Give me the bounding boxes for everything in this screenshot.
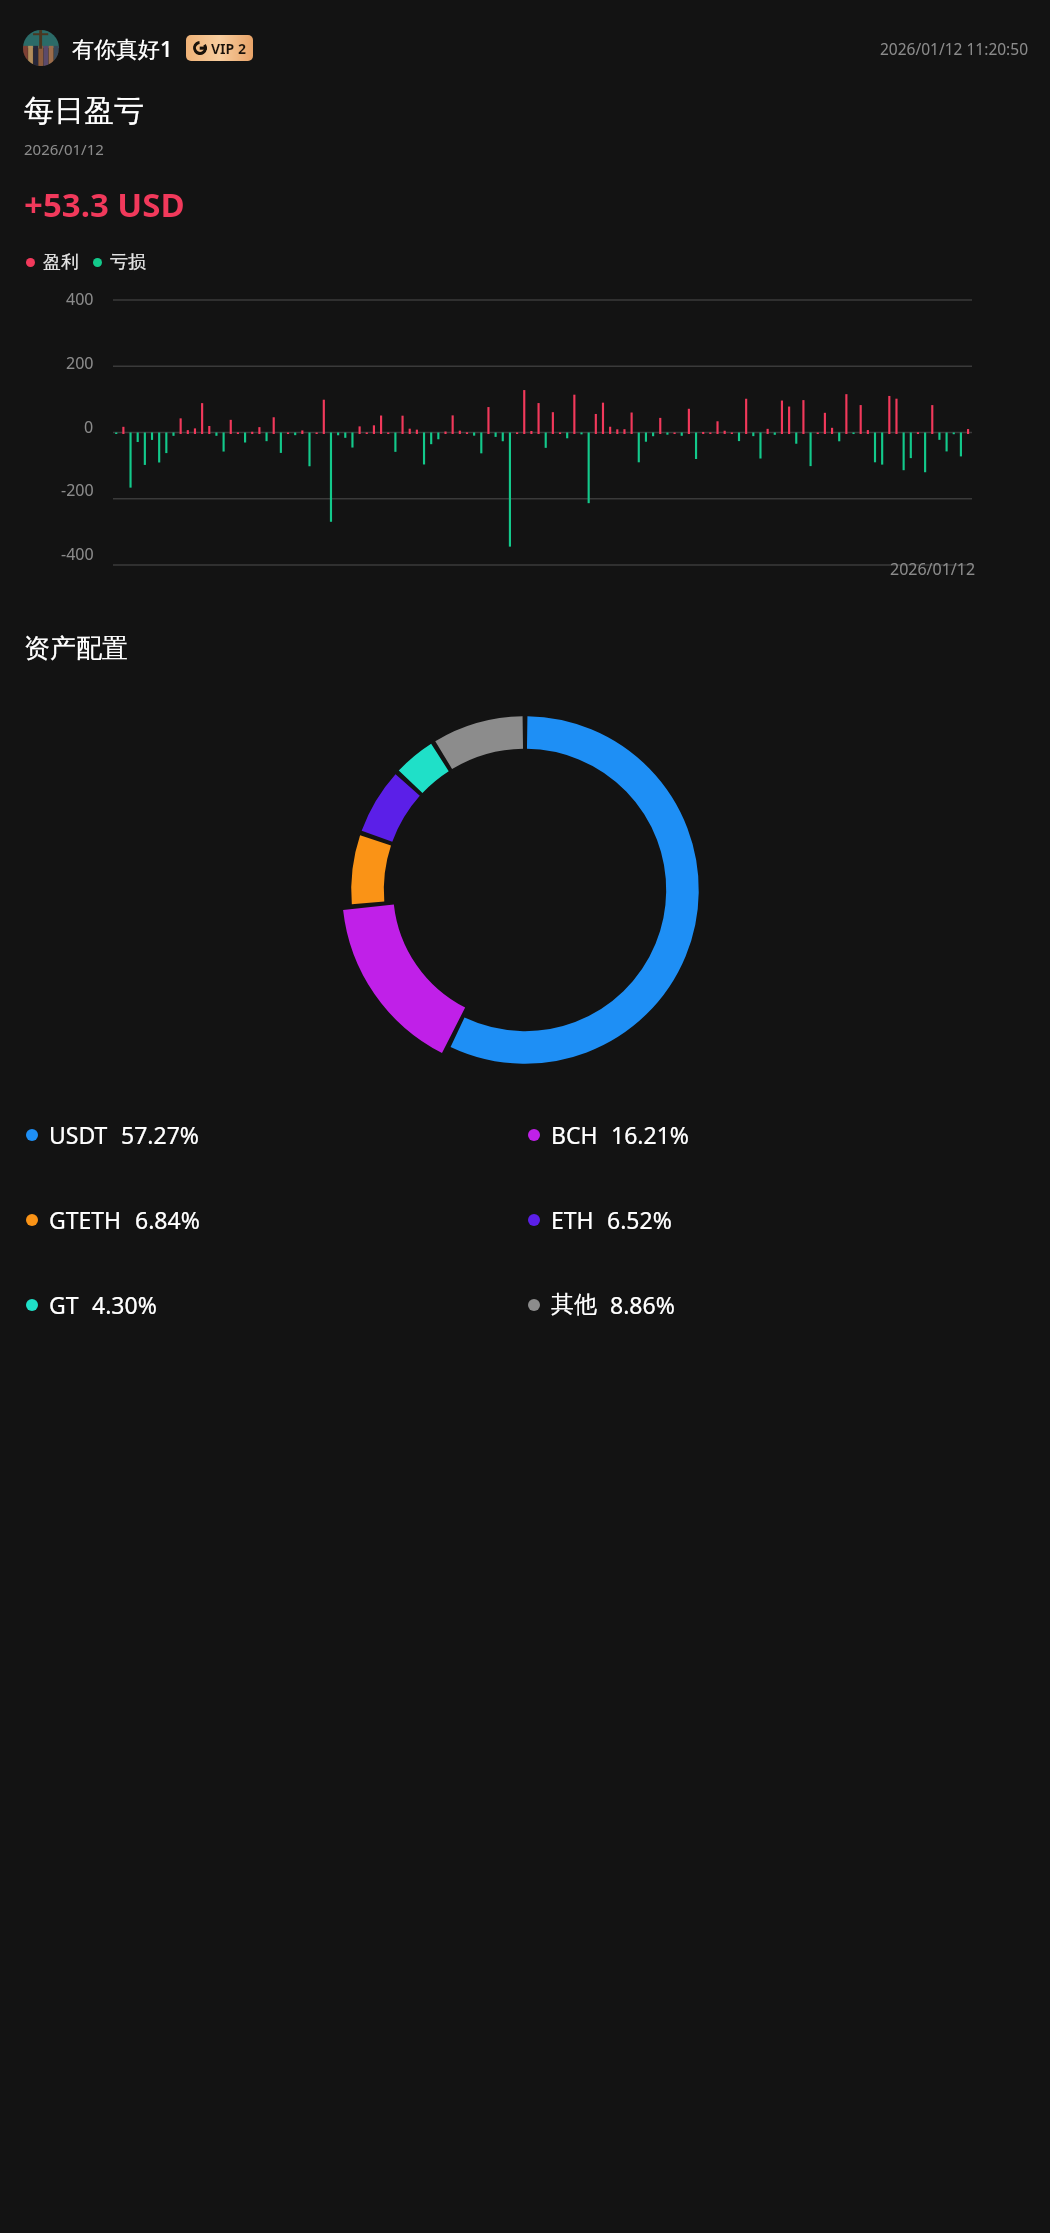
staticText: 其他 (551, 1290, 597, 1319)
staticText: 6.52% (607, 1204, 672, 1235)
staticText: -400 (61, 543, 94, 565)
staticText: 0 (84, 416, 94, 438)
staticText: 2026/01/12 (890, 558, 976, 580)
staticText: 8.86% (610, 1289, 675, 1320)
button[interactable]: 其他 (528, 1289, 1030, 1320)
staticText: 2026/01/12 (24, 139, 104, 159)
staticText: USDT (49, 1119, 108, 1150)
staticText: 亏损 (110, 251, 146, 274)
staticText: 资产配置 (24, 632, 128, 665)
staticText: BCH (551, 1119, 598, 1150)
staticText: 6.84% (135, 1204, 200, 1235)
button[interactable]: GT (26, 1289, 528, 1320)
staticText: 200 (66, 352, 94, 374)
staticText: 有你真好1 (72, 33, 173, 63)
staticText: GT (49, 1289, 79, 1320)
staticText: 16.21% (611, 1119, 689, 1150)
button[interactable]: Profile avatar (23, 30, 59, 66)
button[interactable]: VIP 2 (186, 35, 253, 61)
button[interactable]: BCH (528, 1119, 1030, 1150)
button[interactable]: ETH (528, 1204, 1030, 1235)
staticText: 4.30% (92, 1289, 157, 1320)
staticText: ETH (551, 1204, 594, 1235)
staticText: -200 (61, 479, 94, 501)
staticText: VIP 2 (211, 39, 246, 58)
staticText: 2026/01/12 11:20:50 (880, 38, 1028, 59)
button[interactable]: GTETH (26, 1204, 528, 1235)
staticText: GTETH (49, 1204, 122, 1235)
staticText: 400 (66, 288, 94, 310)
staticText: +53.3 USD (24, 182, 185, 227)
staticText: 57.27% (121, 1119, 199, 1150)
button[interactable]: USDT (26, 1119, 528, 1150)
staticText: 盈利 (43, 251, 79, 274)
staticText: 每日盈亏 (24, 92, 144, 130)
